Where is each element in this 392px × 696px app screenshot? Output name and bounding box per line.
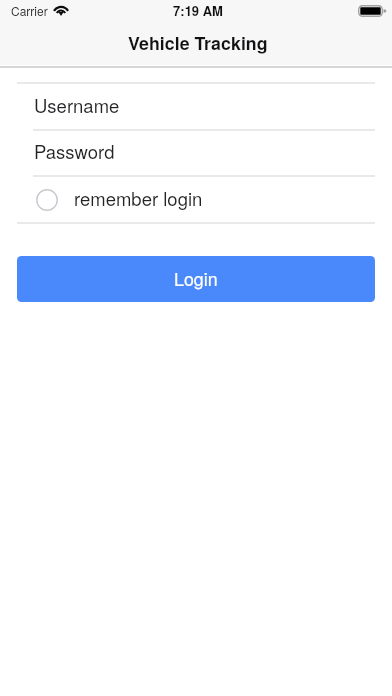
staticText: Password [34,138,115,164]
staticText: remember login [74,185,203,211]
staticText: 7:19 AM [173,1,223,20]
staticText: Carrier [11,2,48,19]
button[interactable]: Password [0,129,392,176]
staticText: Vehicle Tracking [128,30,268,55]
button[interactable]: remember login [0,176,392,223]
button[interactable]: Username [0,83,392,130]
staticText: Login [174,266,218,291]
button[interactable]: Login [17,256,375,302]
staticText: Username [34,92,120,118]
other: Wi-Fi [53,1,69,19]
other: Battery full [358,5,387,17]
